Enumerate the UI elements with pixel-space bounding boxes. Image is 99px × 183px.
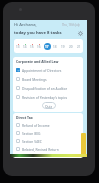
button[interactable]: Appointment of Directors: [16, 65, 81, 74]
staticText: Direct Tax: [16, 115, 33, 120]
button[interactable]: Belated, Revised Return: [16, 145, 81, 153]
staticText: 19: [61, 45, 65, 49]
button[interactable]: Quiz: [42, 102, 56, 109]
staticText: 13: [16, 45, 20, 49]
staticText: Refund of Income: [22, 123, 50, 127]
button[interactable]: 18: [51, 39, 59, 53]
staticText: Quiz: [45, 104, 53, 108]
button[interactable]: Section 80G: [16, 129, 81, 137]
button[interactable]: 20: [67, 39, 75, 53]
staticText: 16: [37, 45, 41, 49]
staticText: today you have 8 tasks: [14, 30, 62, 36]
staticText: Belated, Revised Return: [22, 147, 59, 151]
staticText: Hi Archana,: [14, 22, 37, 28]
button[interactable]: 14: [21, 39, 28, 53]
staticText: 14: [23, 45, 27, 49]
staticText: 17: [45, 45, 49, 49]
staticText: Appointment of Directors: [22, 68, 62, 72]
button[interactable]: 21: [75, 39, 83, 53]
button[interactable]: 15: [28, 39, 35, 53]
staticText: Disqualification of an Auditor: [22, 86, 68, 90]
staticText: Section 54EC: [22, 139, 42, 143]
button[interactable]: 16: [35, 39, 43, 53]
button[interactable]: 13: [14, 39, 21, 53]
staticText: 18: [53, 45, 57, 49]
staticText: Revision of Yesterday's topics: [22, 95, 68, 99]
staticText: Thu, 18th July: [62, 23, 80, 27]
button[interactable]: Refund of Income: [16, 121, 81, 129]
staticText: Section 80G: [22, 131, 41, 135]
staticText: 15: [30, 45, 34, 49]
button[interactable]: Board Meetings: [16, 74, 81, 83]
staticText: 20: [69, 45, 73, 49]
staticText: 21: [77, 45, 81, 49]
button[interactable]: 19: [59, 39, 67, 53]
staticText: Board Meetings: [22, 77, 47, 81]
button[interactable]: Disqualification of an Auditor: [16, 83, 81, 92]
button[interactable]: 17: [43, 39, 51, 53]
button[interactable]: Section 54EC: [16, 137, 81, 145]
staticText: Corporate and Allied Law: [16, 59, 59, 64]
button[interactable]: Revision of Yesterday's topics: [16, 92, 81, 101]
button[interactable]: Settings: [77, 30, 84, 37]
